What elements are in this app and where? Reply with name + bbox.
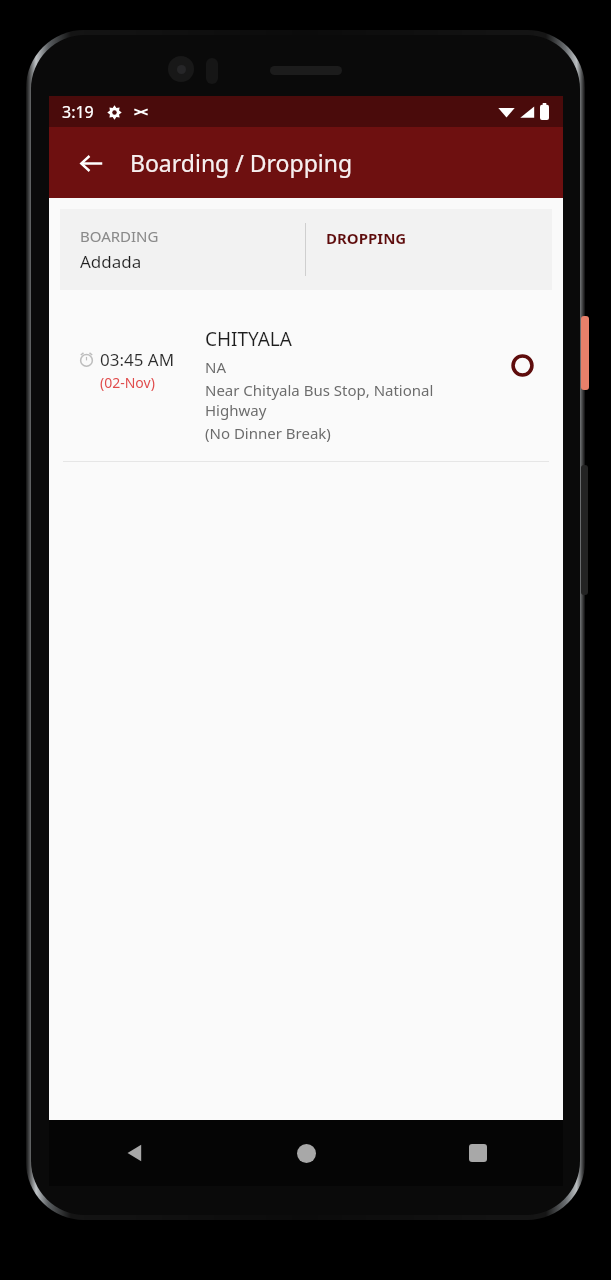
staticText: BOARDING — [80, 226, 159, 246]
staticText: 03:45 AM — [100, 348, 175, 371]
button[interactable]: 03:45 AM — [49, 312, 563, 461]
button[interactable]: Select stop — [505, 348, 539, 382]
staticText: DROPPING — [326, 228, 407, 248]
button[interactable]: Recent apps — [392, 1120, 563, 1186]
staticText: (No Dinner Break) — [205, 423, 331, 443]
staticText: NA — [205, 357, 226, 377]
staticText: (02-Nov) — [100, 373, 155, 392]
staticText: Addada — [80, 250, 142, 273]
button[interactable]: Home — [220, 1120, 392, 1186]
button[interactable]: Back — [49, 1120, 220, 1186]
staticText: 3:19 — [62, 101, 94, 123]
button[interactable]: BOARDING — [60, 209, 305, 290]
staticText: Near Chityala Bus Stop, National Highway — [205, 380, 495, 420]
staticText: Boarding / Dropping — [130, 147, 353, 178]
button[interactable]: Back — [69, 141, 113, 185]
button[interactable]: DROPPING — [306, 209, 552, 290]
staticText: CHITYALA — [205, 326, 292, 352]
